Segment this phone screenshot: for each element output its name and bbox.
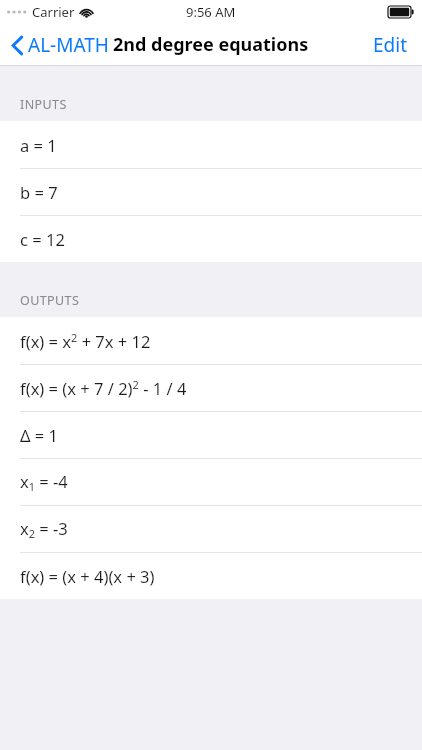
staticText: f(x) = (x + 4)(x + 3) <box>20 565 155 587</box>
staticText: b = 7 <box>20 181 58 203</box>
other: Back <box>11 35 24 56</box>
staticText: a = 1 <box>20 134 57 156</box>
staticText: c = 12 <box>20 228 65 250</box>
staticText: x1 = -4 <box>20 470 68 494</box>
staticText: Δ = 1 <box>20 424 58 446</box>
button[interactable]: x1 = -4 <box>0 458 422 505</box>
staticText: AL-MATH <box>28 32 109 58</box>
staticText: Edit <box>373 32 408 58</box>
staticText: 2nd degree equations <box>113 32 309 57</box>
button[interactable]: b = 7 <box>0 168 422 215</box>
staticText: f(x) = x2 + 7x + 12 <box>20 330 151 352</box>
button[interactable]: Edit <box>359 26 422 64</box>
button[interactable]: a = 1 <box>0 121 422 168</box>
button[interactable]: Δ = 1 <box>0 411 422 458</box>
button[interactable]: c = 12 <box>0 215 422 262</box>
button[interactable]: f(x) = x2 + 7x + 12 <box>0 317 422 364</box>
staticText: 9:56 AM <box>186 3 236 21</box>
staticText: OUTPUTS <box>20 292 80 309</box>
button[interactable]: Back <box>0 28 115 62</box>
button[interactable]: f(x) = (x + 7 / 2)2 - 1 / 4 <box>0 364 422 411</box>
staticText: INPUTS <box>20 96 67 113</box>
staticText: x2 = -3 <box>20 517 68 541</box>
staticText: f(x) = (x + 7 / 2)2 - 1 / 4 <box>20 377 187 399</box>
button[interactable]: x2 = -3 <box>0 505 422 552</box>
button[interactable]: f(x) = (x + 4)(x + 3) <box>0 552 422 599</box>
staticText: Carrier <box>32 3 75 21</box>
